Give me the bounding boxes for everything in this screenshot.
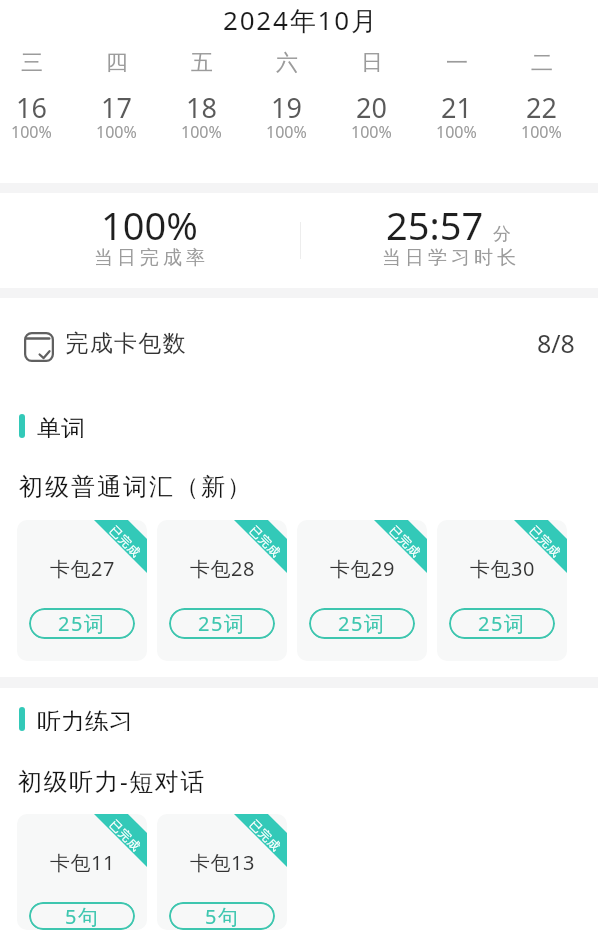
staticText: 已完成 [107,523,144,560]
staticText: 日 [361,49,383,77]
button[interactable]: 四 [74,40,159,148]
button[interactable]: 已完成 [157,814,287,930]
staticText: 25词 [338,610,386,637]
staticText: 五 [191,49,213,77]
staticText: 100% [266,121,307,143]
button[interactable]: 二 [499,40,584,148]
staticText: 已完成 [387,523,424,560]
staticText: 20 [356,89,387,126]
staticText: 25词 [58,610,106,637]
staticText: 100% [101,199,198,251]
staticText: 卡包29 [330,555,395,582]
button[interactable]: 25:57 [299,199,598,288]
staticText: 二 [531,49,553,77]
staticText: 听力练习 [37,707,133,731]
staticText: 卡包27 [50,555,115,582]
staticText: 18 [186,89,217,126]
staticText: 5句 [65,903,100,930]
button[interactable]: 单词 [0,414,598,438]
staticText: 已完成 [247,523,284,560]
button[interactable]: 一 [414,40,499,148]
staticText: 100% [436,121,477,143]
staticText: 已完成 [527,523,564,560]
button[interactable]: 六 [244,40,329,148]
button[interactable]: 已完成 [437,520,567,661]
staticText: 2024年10月 [223,2,379,38]
button[interactable]: 三 [0,40,74,148]
button[interactable]: 已完成 [297,520,427,661]
staticText: 三 [21,49,43,77]
staticText: 25:57 [386,199,484,251]
button[interactable]: Completed card packs [0,298,598,388]
staticText: 卡包28 [190,555,255,582]
staticText: 初级普通词汇（新） [18,472,252,502]
staticText: 21 [441,89,472,126]
staticText: 六 [276,49,298,77]
button[interactable]: 已完成 [17,520,147,661]
button[interactable]: 已完成 [17,814,147,930]
staticText: 完成卡包数 [65,329,186,358]
staticText: 已完成 [247,817,284,854]
staticText: 分 [493,223,511,246]
staticText: 25词 [478,610,526,637]
staticText: 初级听力-短对话 [18,764,206,797]
staticText: 5句 [205,903,240,930]
staticText: 卡包13 [190,849,255,876]
staticText: 卡包30 [470,555,535,582]
staticText: 25词 [198,610,246,637]
staticText: 卡包11 [50,849,115,876]
other: Completed card packs [24,332,54,363]
staticText: 100% [351,121,392,143]
staticText: 一 [446,49,468,77]
staticText: 100% [96,121,137,143]
staticText: 已完成 [107,817,144,854]
staticText: 100% [181,121,222,143]
staticText: 当日学习时长 [380,246,518,270]
button[interactable]: 日 [329,40,414,148]
staticText: 22 [526,89,557,126]
staticText: 8/8 [537,326,575,360]
button[interactable]: 听力练习 [0,707,598,731]
button[interactable]: 100% [0,199,299,288]
staticText: 16 [16,89,47,126]
staticText: 100% [11,121,52,143]
button[interactable]: 已完成 [157,520,287,661]
staticText: 100% [521,121,562,143]
staticText: 当日完成率 [92,246,207,270]
staticText: 17 [101,89,132,126]
staticText: 四 [106,49,128,77]
button[interactable]: 五 [159,40,244,148]
staticText: 单词 [37,414,85,438]
staticText: 19 [271,89,302,126]
